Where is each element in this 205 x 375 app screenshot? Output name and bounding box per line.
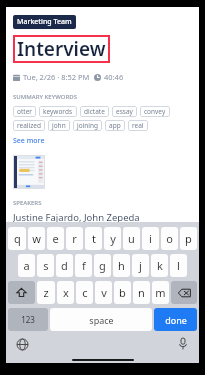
button[interactable]: u [123,227,140,250]
button[interactable]: done [154,308,197,331]
button[interactable]: c [76,281,93,304]
staticText: real [132,121,144,130]
button[interactable]: h [113,254,130,277]
button[interactable]: Voice input [175,336,191,352]
button[interactable]: d [56,254,73,277]
button[interactable]: a [18,254,35,277]
staticText: keywords [43,107,73,116]
staticText: c [82,285,88,300]
button[interactable]: otter [13,106,36,117]
staticText: v [101,285,107,300]
staticText: Interview [17,36,106,62]
staticText: f [82,258,86,273]
button[interactable]: Screenshot attachment [13,155,45,189]
button[interactable]: y [104,227,121,250]
button[interactable]: m [152,281,169,304]
button[interactable]: dictate [80,106,109,117]
button[interactable]: t [85,227,102,250]
button[interactable]: p [180,227,197,250]
staticText: h [118,258,125,273]
button[interactable]: z [37,281,55,304]
button[interactable]: convey [140,106,170,117]
button[interactable]: g [94,254,111,277]
button[interactable]: john [48,120,70,131]
staticText: e [52,231,59,246]
button[interactable]: b [114,281,131,304]
staticText: y [110,231,116,246]
button[interactable]: i [142,227,159,250]
button[interactable]: w [28,227,45,250]
staticText: d [61,258,68,273]
staticText: r [72,231,77,246]
staticText: o [166,231,173,246]
button[interactable]: n [133,281,150,304]
button[interactable]: Switch keyboard [14,336,30,352]
staticText: convey [144,107,166,116]
button[interactable]: v [95,281,112,304]
staticText: Tue, 2/26 · 8:52 PM [23,72,90,82]
staticText: dictate [84,107,105,116]
button[interactable]: Marketing Team [13,15,76,29]
staticText: z [43,285,49,300]
button[interactable]: Interview [13,35,110,63]
button[interactable]: q [8,227,26,250]
staticText: space [89,314,114,326]
staticText: k [157,258,163,273]
staticText: 40:46 [104,72,124,82]
staticText: john [52,121,66,130]
button[interactable]: space [50,308,152,331]
button[interactable]: Shift [8,281,35,304]
staticText: s [43,258,49,273]
button[interactable]: 123 [8,308,48,331]
button[interactable]: essay [112,106,137,117]
staticText: n [138,285,145,300]
button[interactable]: See more [13,136,45,146]
button[interactable]: l [170,254,187,277]
button[interactable]: o [161,227,178,250]
button[interactable]: real [128,120,148,131]
staticText: 123 [21,314,35,325]
staticText: l [177,258,180,273]
button[interactable]: x [57,281,74,304]
button[interactable]: s [37,254,54,277]
staticText: SPEAKERS [13,199,42,207]
button[interactable]: j [132,254,149,277]
staticText: SUMMARY KEYWORDS [13,93,77,101]
staticText: a [23,258,30,273]
staticText: u [128,231,135,246]
staticText: realized [17,121,41,130]
button[interactable]: joining [73,120,102,131]
staticText: Justine Fajardo, John Zepeda [13,211,140,222]
staticText: x [63,285,69,300]
staticText: w [32,231,41,246]
staticText: See more [13,136,45,146]
staticText: t [92,231,96,246]
staticText: p [185,231,192,246]
button[interactable]: r [66,227,83,250]
staticText: joining [77,121,98,130]
button[interactable]: realized [13,120,45,131]
staticText: m [155,285,166,300]
staticText: g [99,258,106,273]
button[interactable]: e [47,227,64,250]
staticText: app [109,121,121,130]
button[interactable]: Backspace [171,281,197,304]
button[interactable]: f [75,254,92,277]
staticText: done [165,314,187,326]
staticText: essay [116,107,133,116]
staticText: b [119,285,126,300]
staticText: Marketing Team [17,17,72,27]
staticText: j [139,258,142,273]
button[interactable]: app [105,120,125,131]
staticText: otter [17,107,32,116]
button[interactable]: keywords [39,106,77,117]
staticText: i [149,231,152,246]
button[interactable]: k [151,254,168,277]
staticText: q [14,231,21,246]
